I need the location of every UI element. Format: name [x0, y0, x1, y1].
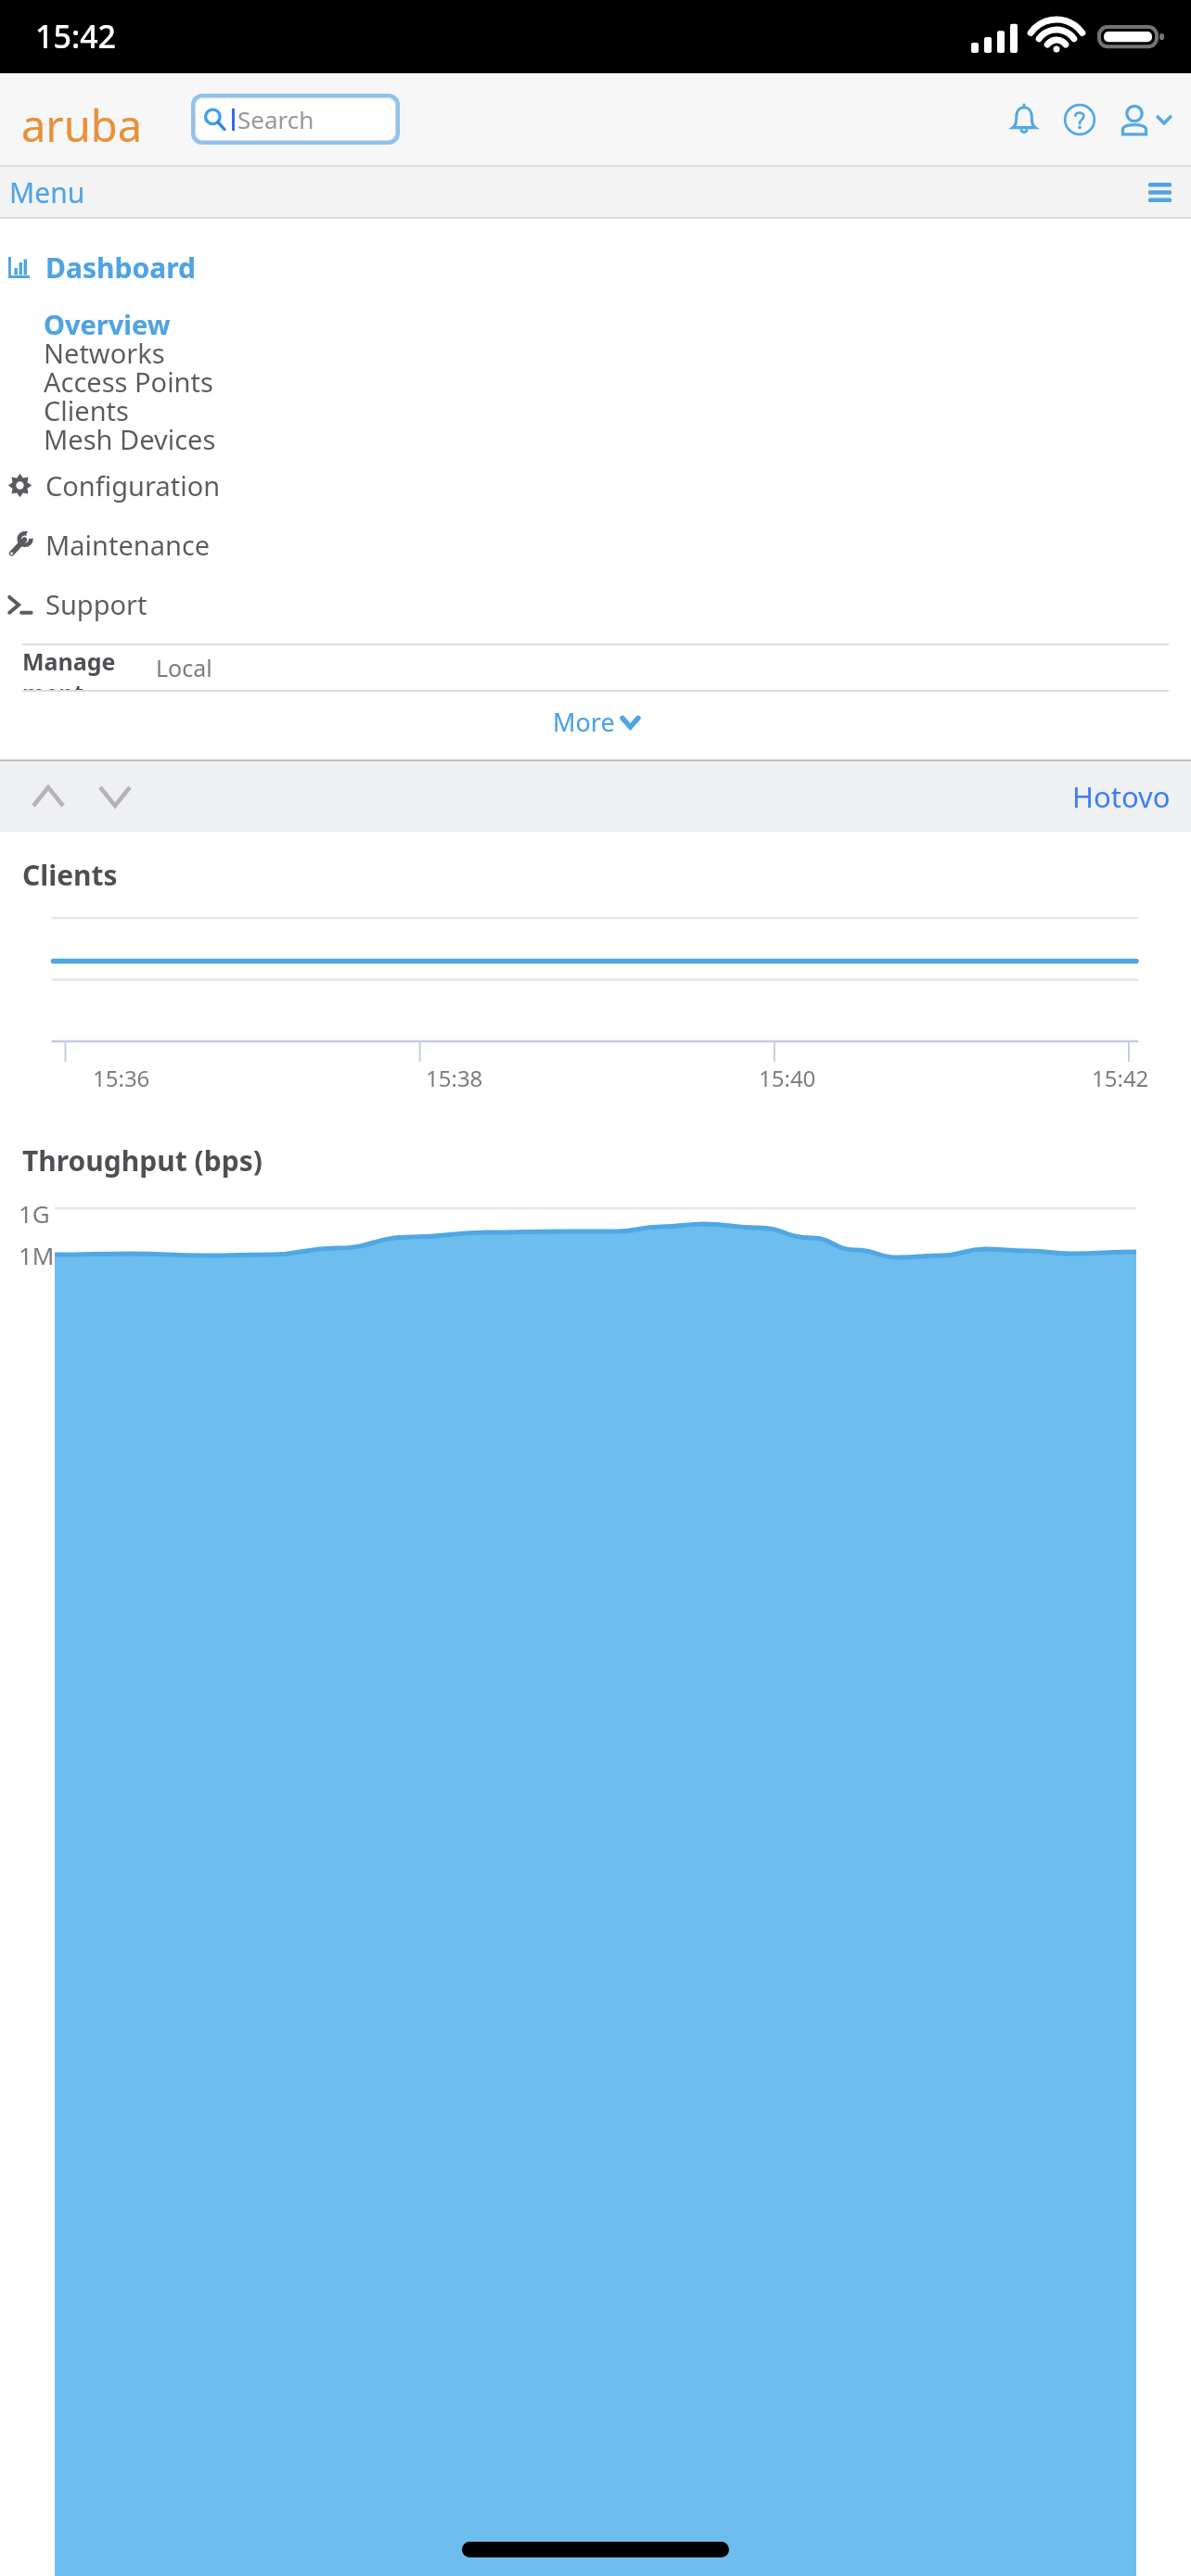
staticText: More [553, 705, 615, 739]
button[interactable]: Menu [0, 168, 95, 217]
staticText: Search [237, 103, 314, 135]
button[interactable]: Access Points [0, 363, 1191, 392]
button[interactable]: Next field [88, 770, 142, 823]
staticText: 15:40 [759, 1063, 816, 1093]
button[interactable]: aruba [13, 96, 150, 144]
staticText: Access Points [44, 363, 213, 392]
button[interactable]: Support [0, 580, 1191, 629]
staticText: 15:36 [93, 1063, 150, 1093]
button[interactable]: Help [1056, 96, 1104, 144]
staticText: 15:38 [426, 1063, 483, 1093]
button[interactable]: Maintenance [0, 520, 1191, 569]
staticText: 1G [19, 1197, 50, 1230]
staticText: Overview [44, 306, 171, 335]
staticText: Networks [44, 335, 165, 363]
staticText: Configuration [45, 467, 221, 504]
button[interactable]: Configuration [0, 461, 1191, 510]
staticText: Mesh Devices [44, 421, 216, 450]
button[interactable]: Notifications [1000, 96, 1048, 144]
button[interactable]: Previous field [21, 770, 75, 823]
staticText: 1M [19, 1239, 55, 1271]
staticText: Hotovo [1072, 777, 1171, 816]
button[interactable]: Search [195, 97, 396, 141]
button[interactable]: Clients [0, 392, 1191, 421]
staticText: 15:42 [1092, 1063, 1149, 1093]
staticText: Dashboard [45, 249, 196, 287]
staticText: Maintenance [45, 527, 211, 563]
staticText: Management [22, 645, 132, 690]
button[interactable]: Open navigation menu [1135, 168, 1184, 216]
staticText: Menu [9, 173, 85, 211]
staticText: Support [45, 586, 147, 622]
button[interactable]: Mesh Devices [0, 421, 1191, 450]
button[interactable]: Networks [0, 335, 1191, 363]
button[interactable]: More [538, 697, 653, 746]
staticText: Clients [44, 392, 129, 421]
button[interactable]: Dashboard [0, 241, 1191, 294]
button[interactable]: Overview [0, 306, 1191, 335]
staticText: Local [156, 652, 212, 683]
button[interactable]: Account menu [1111, 102, 1178, 137]
staticText: 15:42 [35, 15, 117, 57]
staticText: aruba [21, 96, 143, 144]
staticText: Throughput (bps) [22, 1141, 263, 1180]
button[interactable]: Hotovo [1063, 772, 1180, 822]
staticText: Clients [22, 856, 118, 894]
